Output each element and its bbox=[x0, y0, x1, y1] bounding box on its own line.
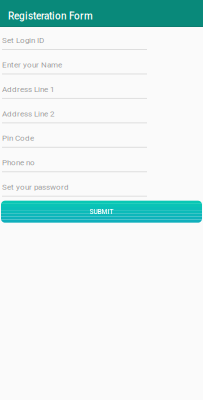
button[interactable]: Address Line 1 bbox=[2, 74, 147, 99]
button[interactable]: Phone no bbox=[2, 148, 147, 172]
button[interactable]: Set Login ID bbox=[2, 27, 147, 50]
staticText: Enter your Name bbox=[2, 60, 62, 69]
staticText: Phone no bbox=[2, 158, 35, 167]
button[interactable]: Pin Code bbox=[2, 123, 147, 148]
staticText: Address Line 2 bbox=[2, 109, 54, 118]
staticText: SUBMIT bbox=[89, 208, 113, 216]
button[interactable]: SUBMIT bbox=[1, 201, 202, 223]
staticText: Pin Code bbox=[2, 133, 34, 143]
button[interactable]: Set your password bbox=[2, 172, 147, 197]
staticText: Registeration Form bbox=[8, 10, 93, 22]
button[interactable]: Address Line 2 bbox=[2, 99, 147, 123]
button[interactable]: Enter your Name bbox=[2, 50, 147, 74]
staticText: Set your password bbox=[2, 182, 69, 192]
staticText: Set Login ID bbox=[2, 36, 44, 45]
staticText: Address Line 1 bbox=[2, 84, 54, 94]
